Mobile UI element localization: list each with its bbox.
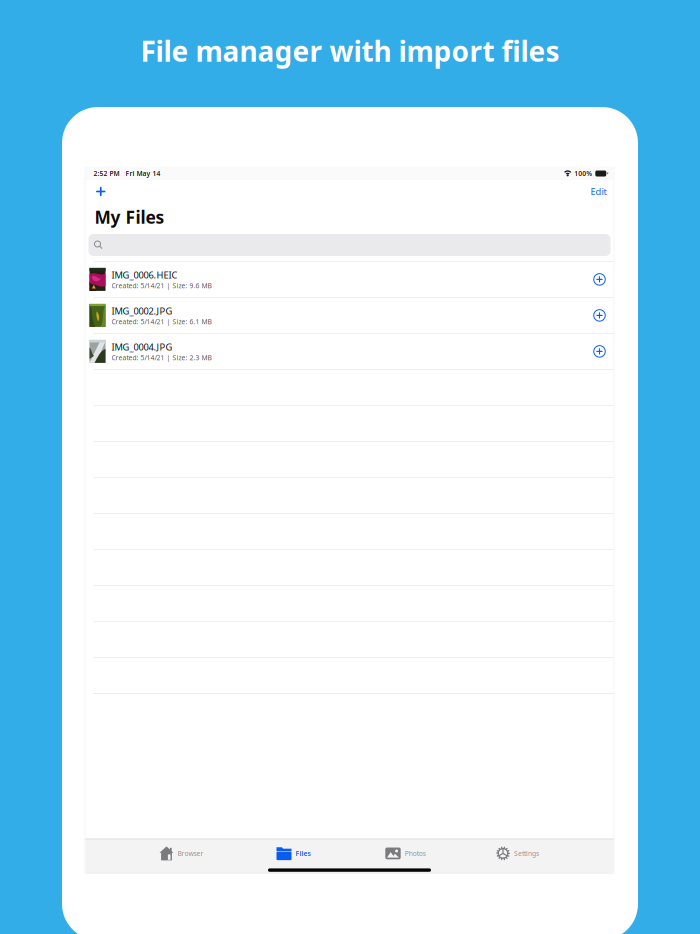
button[interactable]: Settings bbox=[461, 839, 573, 867]
staticText: 100% bbox=[574, 169, 592, 178]
staticText: IMG_0002.JPG bbox=[111, 305, 172, 317]
staticText: IMG_0006.HEIC bbox=[111, 269, 177, 281]
button[interactable]: Add file bbox=[84, 181, 113, 202]
button[interactable]: Browser bbox=[125, 839, 237, 867]
button[interactable]: IMG_0002.JPG bbox=[84, 298, 614, 333]
staticText: Browser bbox=[177, 849, 203, 858]
staticText: IMG_0004.JPG bbox=[111, 341, 172, 353]
button[interactable]: Edit bbox=[582, 179, 614, 204]
staticText: Created: 5/14/21 | Size: 2.3 MB bbox=[111, 353, 211, 362]
button[interactable]: Files bbox=[237, 839, 349, 867]
staticText: Photos bbox=[405, 849, 426, 858]
button[interactable]: Photos bbox=[349, 839, 461, 867]
staticText: 2:52 PM bbox=[93, 169, 119, 178]
staticText: My Files bbox=[94, 205, 164, 228]
staticText: Created: 5/14/21 | Size: 6.1 MB bbox=[111, 317, 211, 326]
button[interactable]: IMG_0006.HEIC bbox=[84, 262, 614, 297]
staticText: File manager with import files bbox=[140, 32, 559, 70]
staticText: Fri May 14 bbox=[125, 169, 160, 178]
staticText: Edit bbox=[590, 185, 606, 198]
button[interactable]: IMG_0004.JPG bbox=[84, 334, 614, 369]
staticText: Created: 5/14/21 | Size: 9.6 MB bbox=[111, 281, 211, 290]
staticText: Settings bbox=[514, 849, 539, 858]
staticText: Files bbox=[295, 849, 310, 858]
